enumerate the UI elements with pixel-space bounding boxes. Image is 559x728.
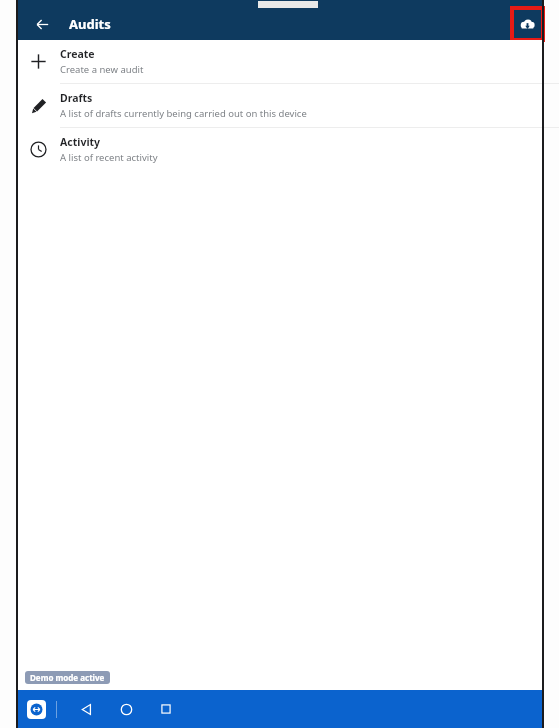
staticText: Create [60,47,95,61]
button[interactable]: Back [73,696,99,722]
staticText: Demo mode active [30,672,105,683]
button[interactable]: Create [17,40,543,83]
staticText: Audits [69,15,111,33]
staticText: A list of recent activity [60,151,158,164]
staticText: Activity [60,135,101,149]
button[interactable]: Back [27,9,57,39]
button[interactable]: Download [512,8,542,40]
button[interactable]: Rotate screen [27,700,46,719]
button[interactable]: Drafts [17,84,543,127]
staticText: Drafts [60,91,93,105]
staticText: A list of drafts currently being carried… [60,107,307,120]
staticText: Create a new audit [60,63,144,76]
button[interactable]: Home [113,696,139,722]
button[interactable]: Activity [17,128,543,171]
button[interactable]: Recent apps [153,696,179,722]
